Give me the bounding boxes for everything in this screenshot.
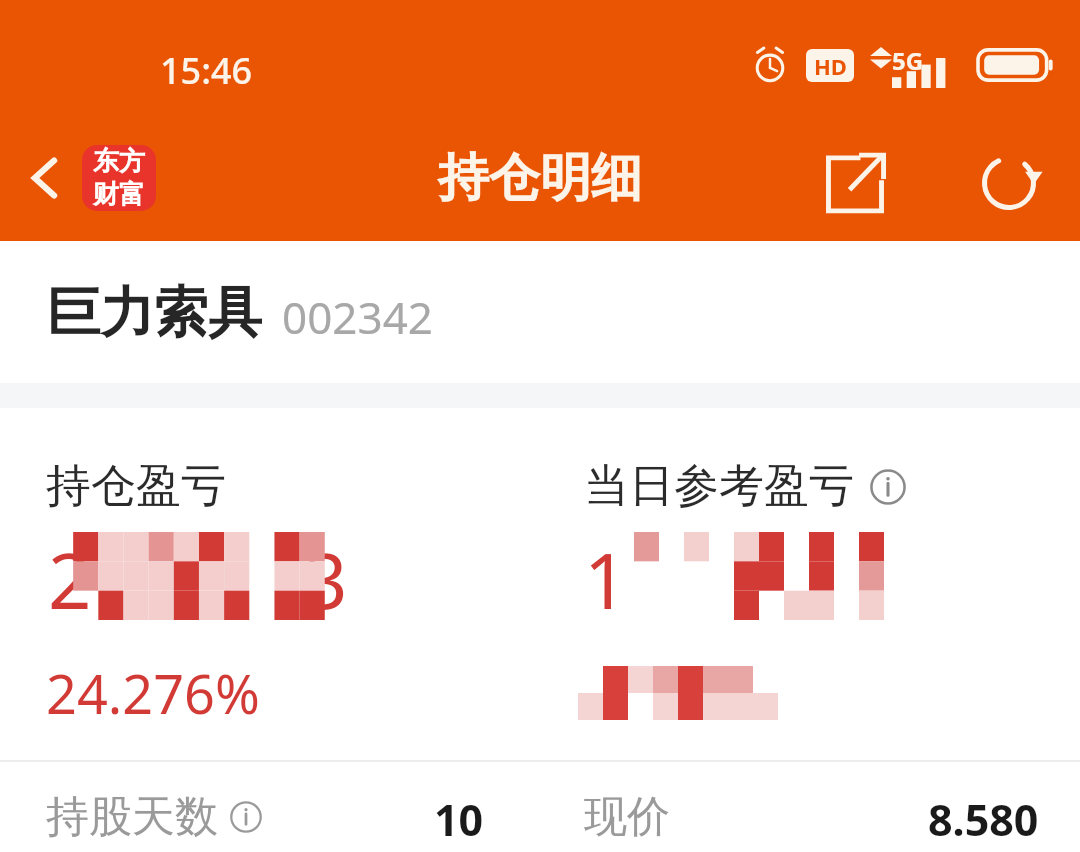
button[interactable]: Share <box>806 134 904 232</box>
staticText: 1 <box>584 528 628 616</box>
staticText: 持仓盈亏 <box>46 458 226 515</box>
staticText: 持仓明细 <box>0 146 1080 210</box>
staticText: 5G <box>892 44 924 77</box>
staticText: 持股天数 <box>46 790 218 844</box>
staticText: 当日参考盈亏 <box>584 458 854 515</box>
staticText: 002342 <box>282 287 434 347</box>
staticText: 2 <box>48 528 92 616</box>
staticText: 10 <box>434 790 484 849</box>
button[interactable]: East Money <box>82 145 156 211</box>
button[interactable]: Back <box>8 142 80 214</box>
staticText: HD <box>814 51 847 81</box>
staticText: 东方 <box>93 145 145 178</box>
staticText: 现价 <box>584 790 670 844</box>
button[interactable]: Refresh <box>960 134 1058 232</box>
staticText: 24.276% <box>46 656 260 730</box>
staticText: 8.580 <box>928 790 1039 849</box>
staticText: 巨力索具 <box>46 279 262 347</box>
staticText: 财富 <box>93 178 145 211</box>
staticText: 3 <box>304 528 348 616</box>
staticText: 15:46 <box>160 46 253 95</box>
